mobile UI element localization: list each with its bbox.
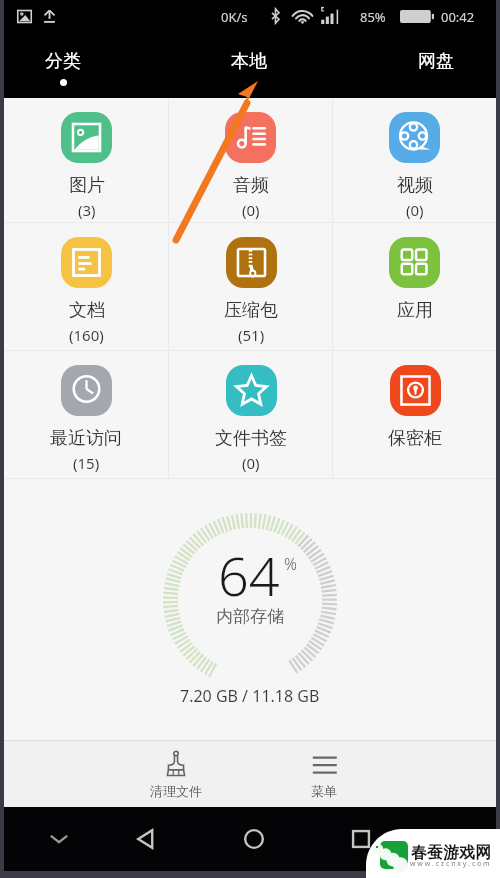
- staticText: (0): [242, 200, 260, 220]
- staticText: 本地: [231, 50, 267, 73]
- staticText: 文件书签: [215, 427, 287, 450]
- staticText: (15): [73, 453, 100, 473]
- staticText: 保密柜: [388, 427, 442, 450]
- button[interactable]: 最近访问: [4, 351, 168, 478]
- staticText: 0K/s: [221, 8, 248, 26]
- staticText: (0): [406, 200, 424, 220]
- button[interactable]: 分类: [0, 33, 126, 98]
- button[interactable]: Back: [130, 807, 162, 871]
- staticText: 应用: [397, 299, 433, 322]
- button[interactable]: 应用: [333, 223, 496, 350]
- button[interactable]: 音频: [169, 98, 332, 222]
- staticText: 文档: [69, 299, 105, 322]
- button[interactable]: 视频: [333, 98, 496, 222]
- button[interactable]: 压缩包: [169, 223, 332, 350]
- staticText: 内部存储: [216, 606, 284, 627]
- button[interactable]: 图片: [4, 98, 168, 222]
- staticText: (3): [78, 200, 96, 220]
- staticText: 图片: [69, 174, 105, 197]
- staticText: 视频: [397, 174, 433, 197]
- staticText: 音频: [233, 174, 269, 197]
- button[interactable]: 本地: [186, 33, 312, 98]
- staticText: 清理文件: [150, 783, 202, 799]
- staticText: 7.20 GB / 11.18 GB: [180, 685, 320, 707]
- staticText: 00:42: [441, 8, 475, 26]
- button[interactable]: Hide keyboard: [43, 807, 75, 871]
- button[interactable]: 网盘: [373, 33, 499, 98]
- staticText: 分类: [45, 50, 81, 73]
- staticText: 64: [218, 538, 280, 612]
- button[interactable]: 清理文件: [134, 741, 218, 807]
- button[interactable]: Home: [238, 807, 270, 871]
- staticText: w w w . c z c n x y . c o m: [410, 859, 490, 869]
- button[interactable]: 文档: [4, 223, 168, 350]
- button[interactable]: 文件书签: [169, 351, 332, 478]
- staticText: 春蚕游戏网: [411, 843, 491, 863]
- button[interactable]: 菜单: [282, 741, 366, 807]
- staticText: 网盘: [418, 50, 454, 73]
- staticText: 压缩包: [224, 299, 278, 322]
- staticText: 菜单: [311, 783, 337, 799]
- button[interactable]: 保密柜: [333, 351, 496, 478]
- button[interactable]: Recents: [345, 807, 377, 871]
- staticText: (0): [242, 453, 260, 473]
- staticText: 85%: [360, 8, 386, 26]
- staticText: 最近访问: [50, 427, 122, 450]
- staticText: %: [284, 553, 297, 575]
- staticText: (160): [69, 325, 104, 345]
- staticText: (51): [238, 325, 265, 345]
